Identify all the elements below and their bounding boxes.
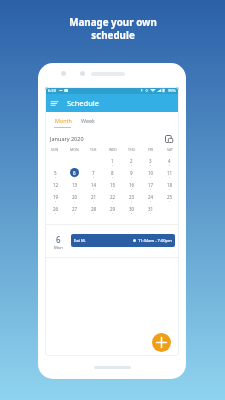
staticText: 17 [148, 182, 154, 188]
staticText: FRI [148, 147, 154, 152]
button[interactable]: 28 [84, 204, 103, 216]
button[interactable]: 15 [103, 180, 122, 192]
button[interactable]: Agenda view [163, 133, 174, 144]
staticText: 15 [110, 182, 116, 188]
staticText: Mon [54, 245, 63, 251]
staticText: 24 [148, 194, 154, 200]
button[interactable]: 30 [122, 204, 141, 216]
staticText: 13 [72, 182, 78, 188]
button[interactable]: 5 [45, 168, 65, 180]
staticText: 28 [91, 206, 97, 212]
button[interactable] [160, 204, 179, 216]
staticText: THU [128, 147, 136, 152]
staticText: 6 [56, 234, 61, 245]
staticText: Manage your own [69, 16, 157, 29]
button[interactable]: Month [51, 112, 75, 129]
staticText: 31 [148, 206, 154, 212]
staticText: 27 [72, 206, 78, 212]
button[interactable]: 24 [141, 192, 160, 204]
staticText: 7 [92, 170, 95, 176]
staticText: MON [70, 147, 79, 152]
staticText: January 2020 [50, 135, 84, 142]
staticText: 9 [130, 170, 133, 176]
staticText: 4 [168, 158, 171, 164]
button[interactable]: Menu [48, 97, 61, 110]
staticText: 30 [129, 206, 135, 212]
button[interactable]: 9 [122, 168, 141, 180]
staticText: Eat M. [74, 238, 86, 243]
button[interactable]: 7 [84, 168, 103, 180]
button[interactable]: 14 [84, 180, 103, 192]
staticText: 6:30 [48, 88, 56, 93]
staticText: 19 [53, 194, 59, 200]
staticText: 18 [167, 182, 173, 188]
staticText: 11 [167, 170, 173, 176]
staticText: schedule [91, 29, 135, 42]
staticText: 25 [167, 194, 173, 200]
button[interactable]: 3 [141, 156, 160, 168]
button[interactable]: 1 [103, 156, 122, 168]
staticText: 8 [111, 170, 114, 176]
staticText: 12 [53, 182, 59, 188]
staticText: 29 [110, 206, 116, 212]
staticText: 2 [130, 158, 133, 164]
staticText: Schedule [67, 98, 99, 108]
staticText: 5 [54, 170, 57, 176]
button[interactable]: 17 [141, 180, 160, 192]
button[interactable]: 21 [84, 192, 103, 204]
button[interactable]: 4 [160, 156, 179, 168]
button[interactable]: 23 [122, 192, 141, 204]
button[interactable]: 13 [65, 180, 84, 192]
staticText: 10 [148, 170, 154, 176]
button[interactable]: Week [76, 112, 100, 129]
staticText: 14 [91, 182, 97, 188]
staticText: SUN [51, 147, 59, 152]
staticText: 26 [53, 206, 59, 212]
button[interactable]: 18 [160, 180, 179, 192]
button[interactable]: 6 [45, 234, 179, 251]
staticText: Week [81, 117, 95, 124]
staticText: TUE [90, 147, 97, 152]
staticText: WED [109, 147, 117, 152]
button[interactable]: 16 [122, 180, 141, 192]
button[interactable]: 20 [65, 192, 84, 204]
staticText: 3 [149, 158, 152, 164]
staticText: 95% [168, 88, 176, 93]
button[interactable] [45, 156, 65, 168]
button[interactable]: 27 [65, 204, 84, 216]
staticText: 6 [73, 170, 76, 176]
button[interactable]: 26 [45, 204, 65, 216]
staticText: 1 [111, 158, 114, 164]
button[interactable]: 19 [45, 192, 65, 204]
button[interactable]: 12 [45, 180, 65, 192]
staticText: Month [55, 117, 72, 124]
staticText: 11:04am - 7:00pm [138, 238, 172, 243]
button[interactable]: Add event [152, 333, 171, 352]
button[interactable]: 6 [65, 168, 84, 180]
staticText: 21 [91, 194, 97, 200]
staticText: 22 [110, 194, 116, 200]
button[interactable]: 8 [103, 168, 122, 180]
button[interactable]: 31 [141, 204, 160, 216]
button[interactable]: 29 [103, 204, 122, 216]
staticText: 20 [72, 194, 78, 200]
button[interactable]: 25 [160, 192, 179, 204]
staticText: SAT [167, 147, 173, 152]
button[interactable]: 10 [141, 168, 160, 180]
staticText: 23 [129, 194, 135, 200]
button[interactable]: 11 [160, 168, 179, 180]
button[interactable]: 22 [103, 192, 122, 204]
staticText: 16 [129, 182, 135, 188]
button[interactable]: 2 [122, 156, 141, 168]
